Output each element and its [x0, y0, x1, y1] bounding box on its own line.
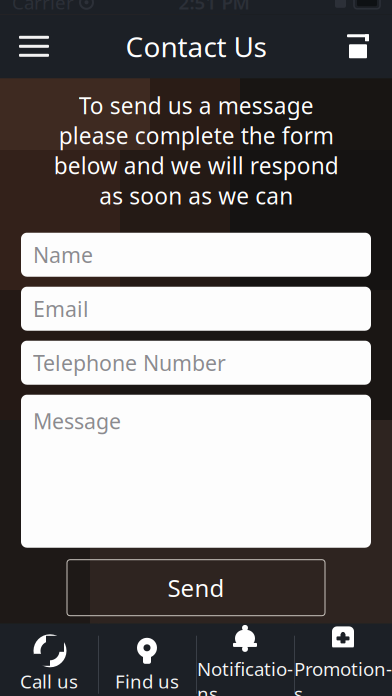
button[interactable]: Message: [21, 395, 371, 548]
button[interactable]: Call us: [0, 624, 98, 696]
button[interactable]: Promotions: [294, 624, 392, 696]
staticText: 2:51 PM: [178, 0, 249, 15]
staticText: Notifications: [197, 656, 293, 696]
staticText: Find us: [115, 669, 179, 694]
staticText: Call us: [20, 669, 78, 694]
staticText: Contact Us: [125, 28, 266, 65]
staticText: Message: [33, 407, 121, 435]
button[interactable]: Home: [330, 20, 386, 72]
button[interactable]: Menu: [6, 20, 62, 72]
button[interactable]: Name: [21, 233, 371, 277]
staticText: Carrier: [12, 0, 74, 15]
button[interactable]: Send: [67, 560, 325, 616]
button[interactable]: Email: [21, 287, 371, 331]
button[interactable]: Notifications: [196, 624, 294, 696]
staticText: Send: [167, 572, 224, 604]
staticText: Email: [33, 294, 89, 323]
staticText: To send us a message please complete the…: [53, 90, 338, 211]
button[interactable]: Find us: [98, 624, 196, 696]
button[interactable]: Telephone Number: [21, 341, 371, 385]
staticText: Name: [33, 240, 93, 269]
staticText: Telephone Number: [33, 348, 226, 377]
staticText: Promotions: [294, 656, 392, 696]
